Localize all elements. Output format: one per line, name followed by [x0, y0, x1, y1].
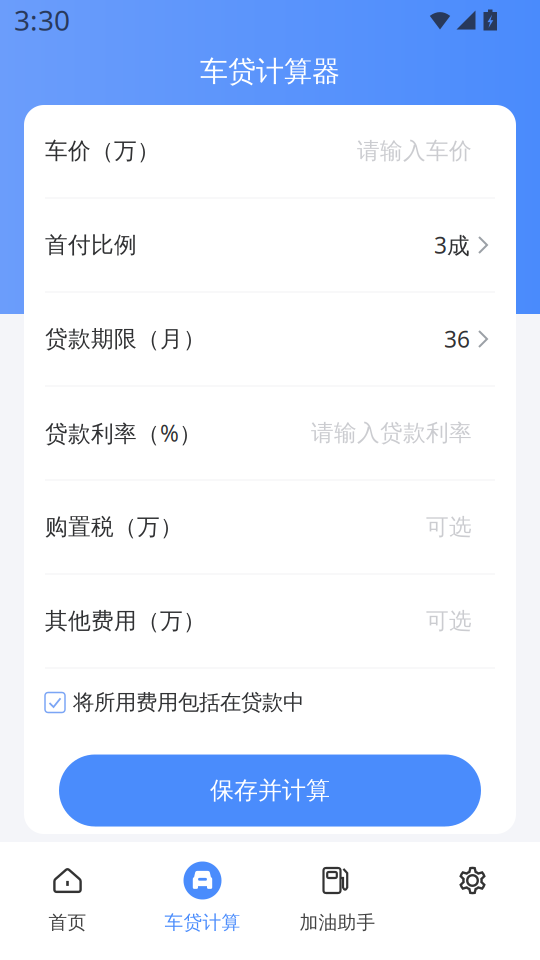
staticText: 请输入车价	[357, 137, 472, 165]
staticText: 贷款利率（%）	[45, 418, 202, 448]
button[interactable]: 将所用费用包括在贷款中	[24, 668, 516, 736]
staticText: 首页	[48, 911, 86, 934]
staticText: 购置税（万）	[45, 513, 183, 541]
button[interactable]: 设置	[405, 841, 540, 960]
button[interactable]: 车贷计算	[135, 841, 270, 960]
staticText: 贷款期限（月）	[45, 325, 206, 353]
button[interactable]: 保存并计算	[59, 754, 481, 826]
staticText: 保存并计算	[210, 776, 330, 805]
staticText: 36	[444, 324, 470, 354]
staticText: 可选	[426, 607, 472, 635]
staticText: 请输入贷款利率	[311, 419, 472, 447]
button[interactable]: 加油助手	[270, 841, 405, 960]
staticText: 3:30	[14, 1, 70, 39]
staticText: 首付比例	[45, 231, 137, 259]
staticText: 车贷计算	[164, 911, 240, 934]
staticText: 车价（万）	[45, 137, 160, 165]
staticText: 3成	[434, 230, 470, 260]
staticText: 其他费用（万）	[45, 607, 206, 635]
staticText: 将所用费用包括在贷款中	[73, 689, 304, 716]
staticText: 可选	[426, 513, 472, 541]
staticText: 车贷计算器	[200, 54, 340, 89]
button[interactable]: 首页	[0, 841, 135, 960]
staticText: 加油助手	[299, 911, 375, 934]
